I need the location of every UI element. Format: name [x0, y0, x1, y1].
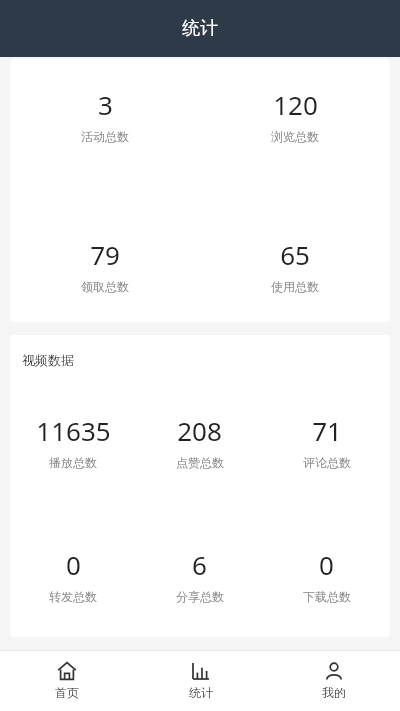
staticText: 6 [192, 547, 207, 582]
staticText: 分享总数 [176, 589, 224, 604]
staticText: 下载总数 [303, 589, 351, 604]
staticText: 71 [312, 413, 342, 448]
staticText: 79 [90, 237, 120, 272]
staticText: 活动总数 [81, 129, 129, 144]
staticText: 208 [177, 413, 222, 448]
staticText: 统计 [189, 685, 213, 700]
staticText: 120 [273, 87, 318, 122]
button[interactable]: 首页 [0, 653, 134, 708]
staticText: 3 [98, 87, 113, 122]
staticText: 65 [280, 237, 310, 272]
staticText: 视频数据 [22, 352, 74, 368]
staticText: 0 [319, 547, 334, 582]
button[interactable]: 我的 [267, 653, 400, 708]
staticText: 统计 [182, 17, 218, 40]
staticText: 0 [66, 547, 81, 582]
staticText: 首页 [55, 685, 79, 700]
staticText: 播放总数 [49, 455, 97, 470]
staticText: 转发总数 [49, 589, 97, 604]
staticText: 浏览总数 [271, 129, 319, 144]
staticText: 我的 [322, 685, 346, 700]
staticText: 使用总数 [271, 279, 319, 294]
staticText: 点赞总数 [176, 455, 224, 470]
staticText: 11635 [36, 413, 111, 448]
staticText: 评论总数 [303, 455, 351, 470]
button[interactable]: 统计 [134, 653, 267, 708]
staticText: 领取总数 [81, 279, 129, 294]
